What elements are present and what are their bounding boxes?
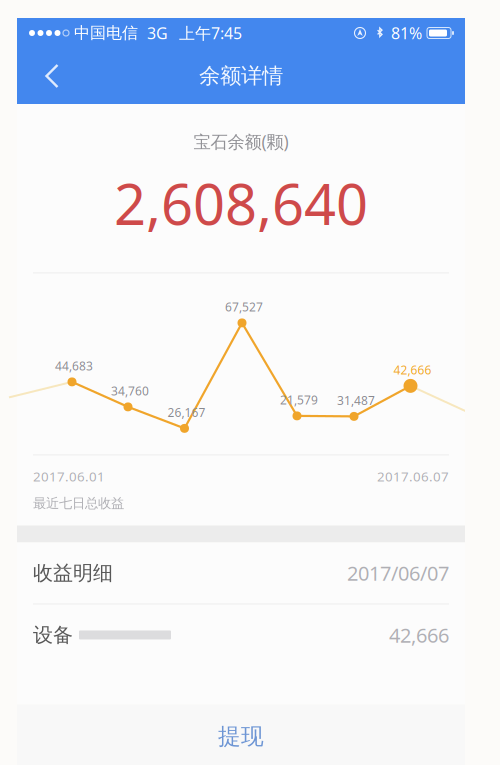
staticText: 最近七日总收益 — [33, 495, 124, 511]
staticText: 中国电信 — [74, 23, 138, 43]
staticText: 67,527 — [225, 299, 263, 315]
staticText: 2017/06/07 — [347, 560, 449, 586]
staticText: 21,579 — [280, 392, 318, 408]
staticText: 提现 — [218, 722, 264, 750]
staticText: 31,487 — [337, 392, 375, 408]
staticText: 81% — [391, 22, 422, 44]
staticText: 26,167 — [167, 404, 205, 420]
button[interactable]: 提现 — [17, 712, 465, 760]
staticText: 42,666 — [393, 362, 431, 378]
staticText: 2017.06.01 — [33, 467, 105, 485]
staticText: 收益明细 — [33, 561, 113, 585]
staticText: 设备 — [33, 623, 73, 647]
staticText: 44,683 — [55, 358, 93, 374]
button[interactable]: 设备 — [17, 604, 465, 665]
staticText: 余额详情 — [199, 63, 283, 89]
staticText: 34,760 — [111, 383, 149, 399]
button[interactable]: Back — [29, 53, 75, 99]
staticText: 42,666 — [389, 622, 449, 648]
staticText: 3G — [147, 22, 168, 44]
staticText: 2,608,640 — [114, 166, 368, 240]
staticText: 宝石余额(颗) — [193, 130, 288, 153]
staticText: 2017.06.07 — [377, 467, 449, 485]
button[interactable]: 收益明细 — [17, 542, 465, 603]
staticText: 上午7:45 — [179, 22, 242, 44]
